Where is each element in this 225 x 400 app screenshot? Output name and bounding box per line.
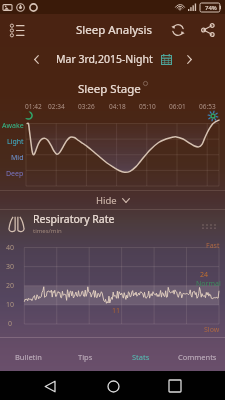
button[interactable]: Bulletin	[0, 340, 57, 374]
staticText: 06:01	[169, 102, 186, 111]
staticText: 03:26	[78, 102, 95, 111]
staticText: Mid	[11, 153, 24, 163]
staticText: 01:42	[25, 102, 42, 111]
staticText: 74%	[205, 4, 217, 12]
staticText: 40	[6, 243, 15, 253]
button[interactable]: Back	[36, 372, 64, 400]
staticText: Mar 3rd,2015-Night	[56, 52, 153, 66]
button[interactable]: Recent apps	[161, 372, 189, 400]
button[interactable]: Choose date	[159, 52, 173, 66]
staticText: Normal	[196, 279, 221, 289]
staticText: Hide	[96, 194, 117, 207]
staticText: 02:34	[48, 102, 65, 111]
staticText: Light	[7, 137, 24, 147]
staticText: Slow	[204, 325, 220, 335]
staticText: 30	[6, 262, 15, 272]
staticText: 20	[6, 281, 15, 291]
staticText: Sleep Analysis	[76, 22, 153, 38]
button[interactable]: Share	[195, 17, 221, 43]
staticText: Sleep Stage	[78, 81, 141, 97]
staticText: Awake	[2, 121, 24, 131]
staticText: Stats	[132, 352, 150, 362]
button[interactable]: Home	[99, 372, 127, 400]
staticText: times/min	[33, 227, 62, 235]
staticText: Bulletin	[15, 352, 42, 362]
staticText: 04:18	[109, 102, 126, 111]
staticText: Comments	[178, 352, 217, 362]
staticText: 24	[200, 270, 209, 280]
staticText: Deep	[6, 169, 24, 179]
staticText: 10	[6, 300, 15, 310]
staticText: 0	[8, 319, 13, 329]
staticText: 05:10	[139, 102, 156, 111]
button[interactable]: Stats	[113, 340, 169, 374]
staticText: Tips	[78, 352, 93, 362]
button[interactable]: Tips	[57, 340, 113, 374]
button[interactable]: Menu	[4, 17, 30, 43]
staticText: Fast	[206, 241, 220, 251]
staticText: 11	[112, 306, 121, 316]
button[interactable]: Next day	[179, 49, 199, 69]
button[interactable]: Comments	[169, 340, 225, 374]
button[interactable]: Refresh	[165, 17, 191, 43]
staticText: 06:53	[199, 102, 216, 111]
button[interactable]: Hide	[0, 190, 225, 210]
button[interactable]: Previous day	[26, 49, 46, 69]
staticText: Respiratory Rate	[33, 212, 115, 226]
